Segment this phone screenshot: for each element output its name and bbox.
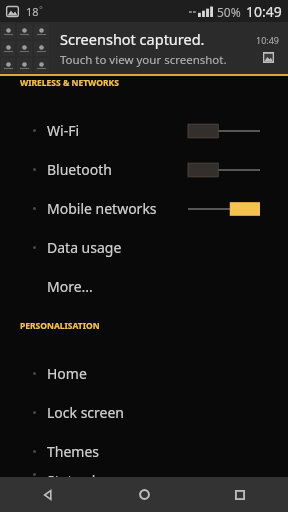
button[interactable]: Data usage (0, 228, 288, 267)
staticText: Home (47, 364, 87, 383)
staticText: WIRELESS & NETWORKS (20, 77, 119, 89)
button[interactable]: Themes (0, 432, 288, 471)
button[interactable]: Recents (192, 477, 288, 512)
staticText: 10:49 (256, 34, 280, 46)
staticText: PERSONALISATION (20, 320, 100, 332)
staticText: Screenshot captured. (60, 29, 205, 49)
button[interactable] (188, 120, 260, 142)
button[interactable]: Status bar (0, 471, 288, 477)
staticText: Lock screen (47, 403, 125, 422)
button[interactable]: Mobile networks (0, 189, 288, 228)
staticText: Status bar (47, 471, 114, 477)
button[interactable]: Back (0, 477, 96, 512)
staticText: Bluetooth (47, 160, 112, 179)
staticText: Mobile networks (47, 199, 157, 218)
staticText: Themes (47, 442, 100, 461)
staticText: More... (47, 277, 93, 296)
button[interactable]: Bluetooth (0, 150, 288, 189)
button[interactable]: Lock screen (0, 393, 288, 432)
staticText: Wi-Fi (47, 121, 80, 140)
staticText: 50% (217, 4, 241, 20)
button[interactable]: Home (96, 477, 192, 512)
button[interactable]: Wi-Fi (0, 111, 288, 150)
button[interactable]: Quick settings (0, 22, 50, 74)
button[interactable]: Screenshot captured. (50, 22, 288, 74)
staticText: ° (39, 3, 43, 15)
button[interactable] (188, 159, 260, 181)
button[interactable] (188, 198, 260, 220)
staticText: Touch to view your screenshot. (60, 52, 227, 68)
staticText: Data usage (47, 238, 122, 257)
staticText: 10:49 (246, 2, 282, 21)
button[interactable]: Home (0, 354, 288, 393)
button[interactable]: More... (0, 267, 288, 306)
staticText: 18 (26, 4, 39, 19)
